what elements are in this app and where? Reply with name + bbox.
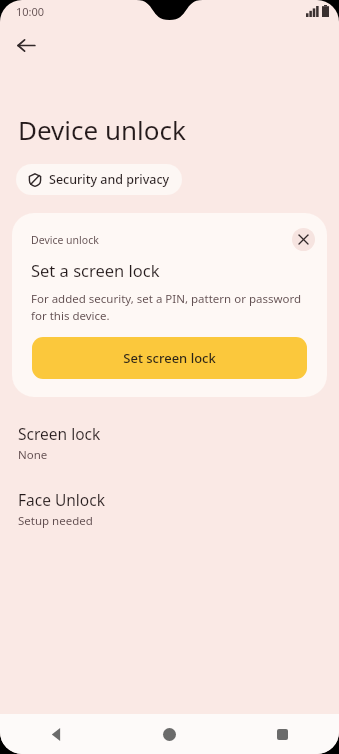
staticText: For added security, set a PIN, pattern o… — [31, 291, 308, 323]
button[interactable]: Home — [113, 714, 226, 754]
button[interactable]: Back — [6, 25, 46, 65]
staticText: Device unlock — [31, 233, 99, 247]
staticText: Security and privacy — [49, 171, 170, 188]
staticText: 10:00 — [16, 4, 45, 19]
staticText: Set a screen lock — [31, 259, 160, 281]
button[interactable]: Recent apps — [226, 714, 339, 754]
button[interactable]: Face Unlock — [0, 489, 339, 529]
staticText: Screen lock — [18, 423, 101, 444]
staticText: None — [18, 447, 48, 463]
button[interactable]: Back — [0, 714, 113, 754]
staticText: Setup needed — [18, 513, 93, 529]
button[interactable]: Set screen lock — [32, 337, 307, 379]
staticText: Device unlock — [18, 112, 186, 147]
button[interactable]: Dismiss — [292, 228, 315, 251]
button[interactable]: Screen lock — [0, 423, 339, 463]
staticText: Face Unlock — [18, 489, 105, 510]
button[interactable]: Security and privacy — [16, 164, 182, 195]
staticText: Set screen lock — [123, 349, 216, 367]
